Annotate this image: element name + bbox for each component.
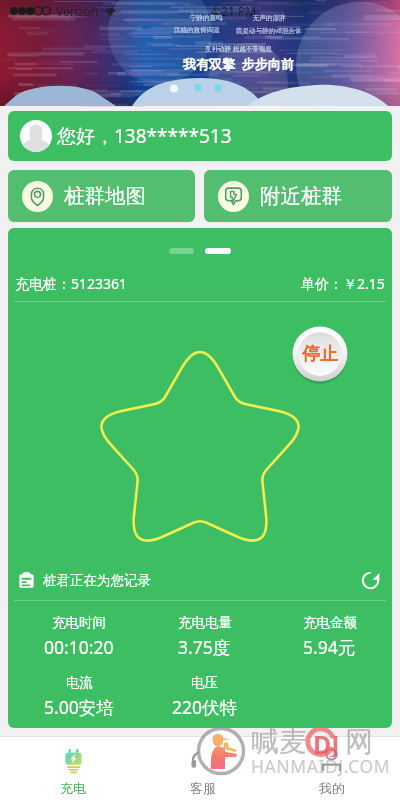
staticText: 附近桩群 bbox=[260, 183, 342, 209]
button[interactable]: 您好，138*****513 bbox=[8, 111, 392, 161]
staticText: 我的 bbox=[319, 780, 345, 796]
staticText: 桩群地图 bbox=[64, 183, 146, 209]
staticText: HANMAIDJ.COM bbox=[251, 754, 391, 778]
staticText: 4:21 PM bbox=[211, 3, 257, 19]
staticText: 3.75度 bbox=[178, 635, 231, 659]
staticText: 喊麦 bbox=[251, 724, 307, 759]
staticText: 无声的澎湃 bbox=[253, 14, 286, 22]
staticText: 桩君正在为您记录 bbox=[43, 572, 151, 589]
staticText: 单价：￥2.15 bbox=[301, 274, 385, 293]
staticText: 停止 bbox=[302, 343, 338, 366]
staticText: 网 bbox=[345, 724, 373, 759]
staticText: 充电电量 bbox=[178, 614, 232, 631]
button[interactable]: Refresh bbox=[358, 568, 382, 592]
staticText: 宁静的轰鸣 bbox=[190, 14, 223, 22]
staticText: 充电时间 bbox=[52, 614, 106, 631]
staticText: 220伏特 bbox=[172, 695, 238, 719]
staticText: 沉稳的激情四溢 bbox=[174, 26, 220, 34]
staticText: 充电 bbox=[60, 780, 86, 796]
staticText: 您好，138*****513 bbox=[57, 123, 232, 149]
staticText: 互补动静 超越不带喘息 bbox=[205, 44, 272, 53]
staticText: DJ bbox=[313, 727, 340, 757]
staticText: 电压 bbox=[191, 674, 218, 691]
button[interactable]: 桩群地图 bbox=[8, 170, 195, 222]
staticText: 5.94元 bbox=[303, 635, 356, 659]
staticText: 我有双擎 步步向前 bbox=[183, 55, 294, 73]
button[interactable]: 我的 bbox=[267, 737, 396, 800]
button[interactable]: 停止 bbox=[292, 326, 348, 382]
staticText: Verizon bbox=[56, 3, 99, 19]
button[interactable]: 客服 bbox=[138, 737, 267, 800]
staticText: 00:10:20 bbox=[44, 635, 114, 659]
staticText: 电流 bbox=[66, 674, 93, 691]
staticText: 5.00安培 bbox=[44, 695, 114, 719]
button[interactable]: 附近桩群 bbox=[204, 170, 392, 222]
staticText: 客服 bbox=[190, 780, 216, 796]
staticText: 充电桩：5123361 bbox=[15, 274, 128, 293]
button[interactable]: 充电 bbox=[8, 737, 138, 800]
staticText: 我是动与静的v8混合体 bbox=[236, 26, 302, 35]
staticText: 充电金额 bbox=[303, 614, 357, 631]
